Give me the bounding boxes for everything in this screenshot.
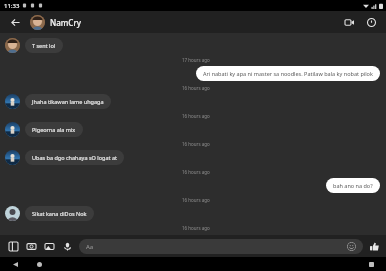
- staticText: 16 hours ago: [182, 113, 210, 119]
- staticText: NamCry: [50, 17, 82, 28]
- button[interactable]: Recent apps: [366, 259, 376, 269]
- button[interactable]: Ari nabati ky apa ni master sa noodles. …: [196, 66, 380, 81]
- staticText: 16 hours ago: [182, 197, 210, 203]
- staticText: Jhaha tikawan lame uhgaga: [32, 98, 104, 105]
- button[interactable]: Video call: [340, 13, 358, 31]
- button[interactable]: Gallery: [40, 237, 58, 255]
- button[interactable]: Apps: [4, 237, 22, 255]
- staticText: bah ano na do?: [333, 182, 373, 189]
- staticText: T sent lol: [32, 42, 56, 49]
- staticText: 16 hours ago: [182, 85, 210, 91]
- button[interactable]: T sent lol: [25, 38, 63, 53]
- button[interactable]: Camera: [22, 237, 40, 255]
- staticText: Sikat kana diDos Nok: [32, 210, 87, 217]
- staticText: 16 hours ago: [182, 141, 210, 147]
- button[interactable]: Back: [6, 13, 24, 31]
- button[interactable]: More options: [362, 13, 380, 31]
- button[interactable]: Emoji: [347, 242, 356, 251]
- button[interactable]: NamCry: [30, 15, 340, 30]
- button[interactable]: Back: [10, 259, 20, 269]
- button[interactable]: Pigeorna ala mix: [25, 122, 83, 137]
- staticText: Ari nabati ky apa ni master sa noodles. …: [203, 70, 373, 77]
- button[interactable]: Aa: [79, 239, 363, 254]
- button[interactable]: Jhaha tikawan lame uhgaga: [25, 94, 111, 109]
- staticText: Ubas ba dgo chahaya sO logat at: [32, 154, 117, 161]
- staticText: 16 hours ago: [182, 225, 210, 231]
- button[interactable]: Sikat kana diDos Nok: [25, 206, 94, 221]
- staticText: 11:33: [4, 2, 20, 10]
- staticText: 17 hours ago: [182, 57, 210, 63]
- button[interactable]: Voice message: [58, 237, 76, 255]
- staticText: 16 hours ago: [182, 169, 210, 175]
- staticText: Pigeorna ala mix: [32, 126, 76, 133]
- button[interactable]: Home: [34, 259, 44, 269]
- button[interactable]: bah ano na do?: [326, 178, 380, 193]
- button[interactable]: Like: [366, 238, 382, 254]
- staticText: Aa: [86, 243, 94, 251]
- button[interactable]: Ubas ba dgo chahaya sO logat at: [25, 150, 124, 165]
